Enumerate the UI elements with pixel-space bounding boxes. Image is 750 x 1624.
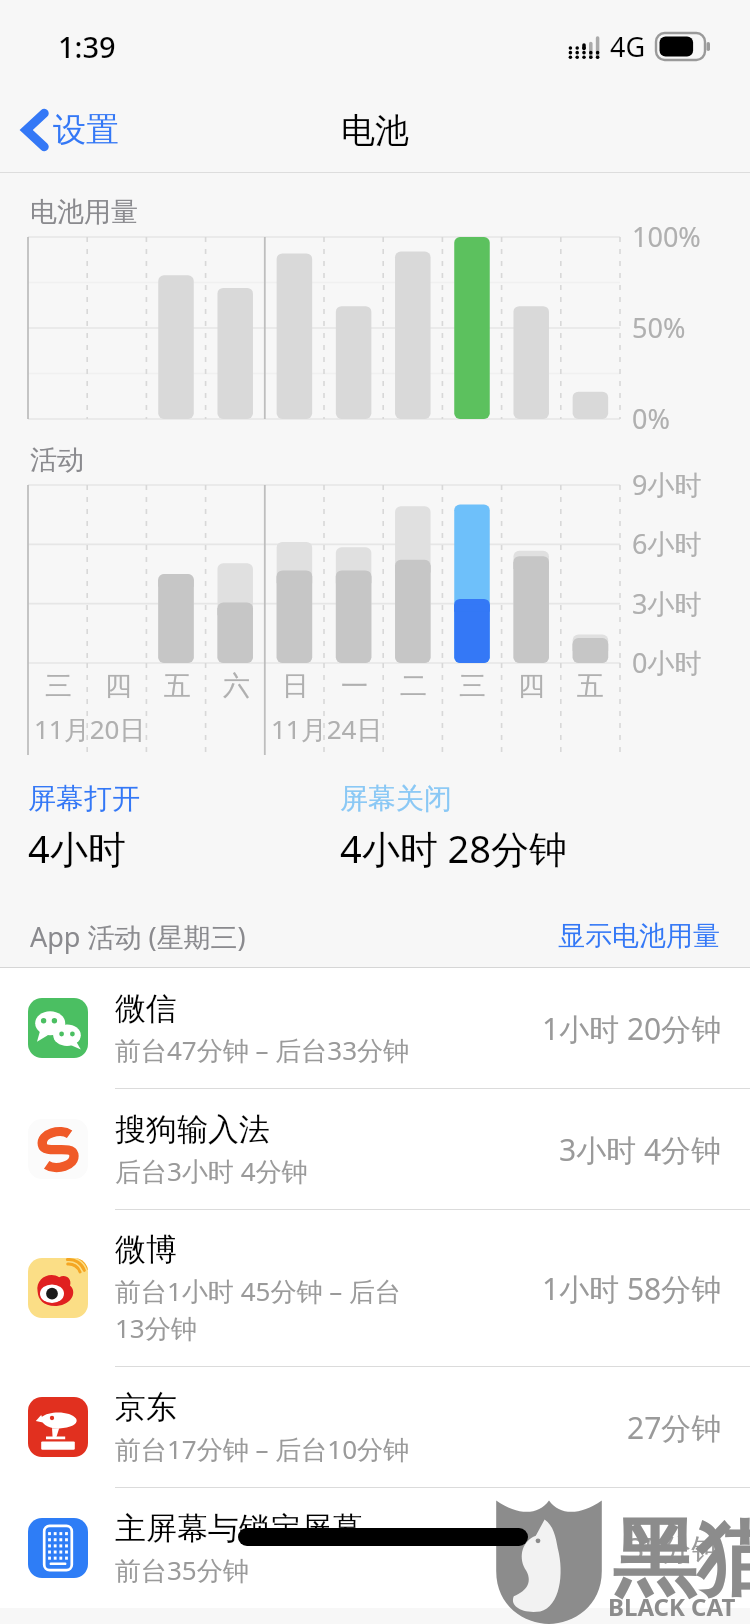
staticText: 0% (632, 400, 670, 437)
button[interactable]: 主屏幕与锁定屏幕 (0, 1488, 750, 1608)
staticText: 4G (610, 28, 646, 65)
staticText: 6小时 (632, 525, 702, 562)
staticText: 100% (632, 218, 701, 255)
button[interactable]: 微信 (0, 968, 750, 1088)
staticText: 11月24日 (271, 711, 383, 747)
staticText: 35分钟 (627, 1528, 722, 1569)
staticText: 4小时 28分钟 (340, 822, 568, 874)
staticText: 五 (577, 669, 604, 703)
staticText: 电池 (341, 109, 409, 152)
staticText: 电池用量 (30, 195, 138, 229)
staticText: App 活动 (星期三) (30, 918, 246, 955)
staticText: BLACK CAT (608, 1590, 736, 1623)
staticText: 三 (459, 669, 486, 703)
button[interactable]: 设置 (18, 103, 125, 157)
staticText: 三 (45, 669, 72, 703)
staticText: 屏幕关闭 (340, 781, 452, 816)
staticText: 主屏幕与锁定屏幕 (115, 1509, 363, 1548)
button[interactable]: 屏幕打开 (28, 781, 340, 874)
staticText: 搜狗输入法 (115, 1110, 270, 1149)
staticText: 1小时 58分钟 (542, 1268, 722, 1309)
staticText: 日 (282, 669, 309, 703)
staticText: 活动 (30, 443, 84, 477)
staticText: 9小时 (632, 466, 702, 503)
staticText: 四 (518, 669, 545, 703)
staticText: 后台3小时 4分钟 (115, 1153, 308, 1189)
button[interactable]: 京东 (0, 1367, 750, 1487)
staticText: 二 (400, 669, 427, 703)
staticText: 27分钟 (627, 1407, 722, 1448)
staticText: 前台17分钟 – 后台10分钟 (115, 1431, 410, 1467)
staticText: 前台35分钟 (115, 1552, 249, 1588)
staticText: 11月20日 (34, 711, 146, 747)
staticText: 3小时 4分钟 (559, 1129, 722, 1170)
staticText: 四 (105, 669, 132, 703)
staticText: 一 (341, 669, 368, 703)
button[interactable]: 屏幕关闭 (340, 781, 750, 874)
staticText: 50% (632, 309, 686, 346)
button[interactable]: 显示电池用量 (558, 919, 720, 953)
button[interactable]: 搜狗输入法 (0, 1089, 750, 1209)
staticText: 3小时 (632, 585, 702, 622)
staticText: 1小时 20分钟 (542, 1008, 722, 1049)
staticText: 五 (164, 669, 191, 703)
staticText: 微信 (115, 989, 177, 1028)
staticText: 显示电池用量 (558, 919, 720, 953)
staticText: 前台47分钟 – 后台33分钟 (115, 1032, 410, 1068)
staticText: 屏幕打开 (28, 781, 140, 816)
button[interactable]: 微博 (0, 1210, 750, 1366)
staticText: 黑猫 (612, 1506, 750, 1612)
staticText: 0小时 (632, 644, 702, 681)
staticText: 微博 (115, 1230, 177, 1269)
staticText: 前台1小时 45分钟 – 后台 13分钟 (115, 1273, 401, 1346)
staticText: 1:39 (58, 27, 116, 66)
staticText: 六 (223, 669, 250, 703)
staticText: 4小时 (28, 822, 126, 874)
staticText: 京东 (115, 1388, 177, 1427)
staticText: 设置 (53, 109, 119, 151)
